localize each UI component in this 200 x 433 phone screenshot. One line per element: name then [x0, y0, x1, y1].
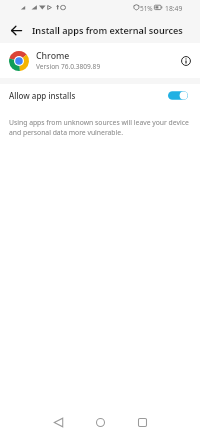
button[interactable]: Recent apps: [129, 411, 155, 433]
button[interactable]: Back: [45, 411, 71, 433]
button[interactable]: Allow app installs toggle: [165, 86, 191, 104]
button[interactable]: Home: [87, 411, 113, 433]
staticText: Chrome: [36, 50, 70, 62]
staticText: Version 76.0.3809.89: [36, 62, 101, 71]
button[interactable]: Chrome: [0, 43, 200, 78]
staticText: Install apps from external sources: [32, 24, 183, 36]
staticText: 18:49: [165, 4, 183, 13]
button[interactable]: App info: [173, 48, 199, 74]
staticText: Allow app installs: [9, 90, 76, 101]
button[interactable]: Back: [0, 16, 29, 43]
staticText: 51%: [140, 4, 153, 13]
button[interactable]: Allow app installs: [0, 84, 200, 107]
staticText: Using apps from unknown sources will lea…: [9, 118, 194, 137]
